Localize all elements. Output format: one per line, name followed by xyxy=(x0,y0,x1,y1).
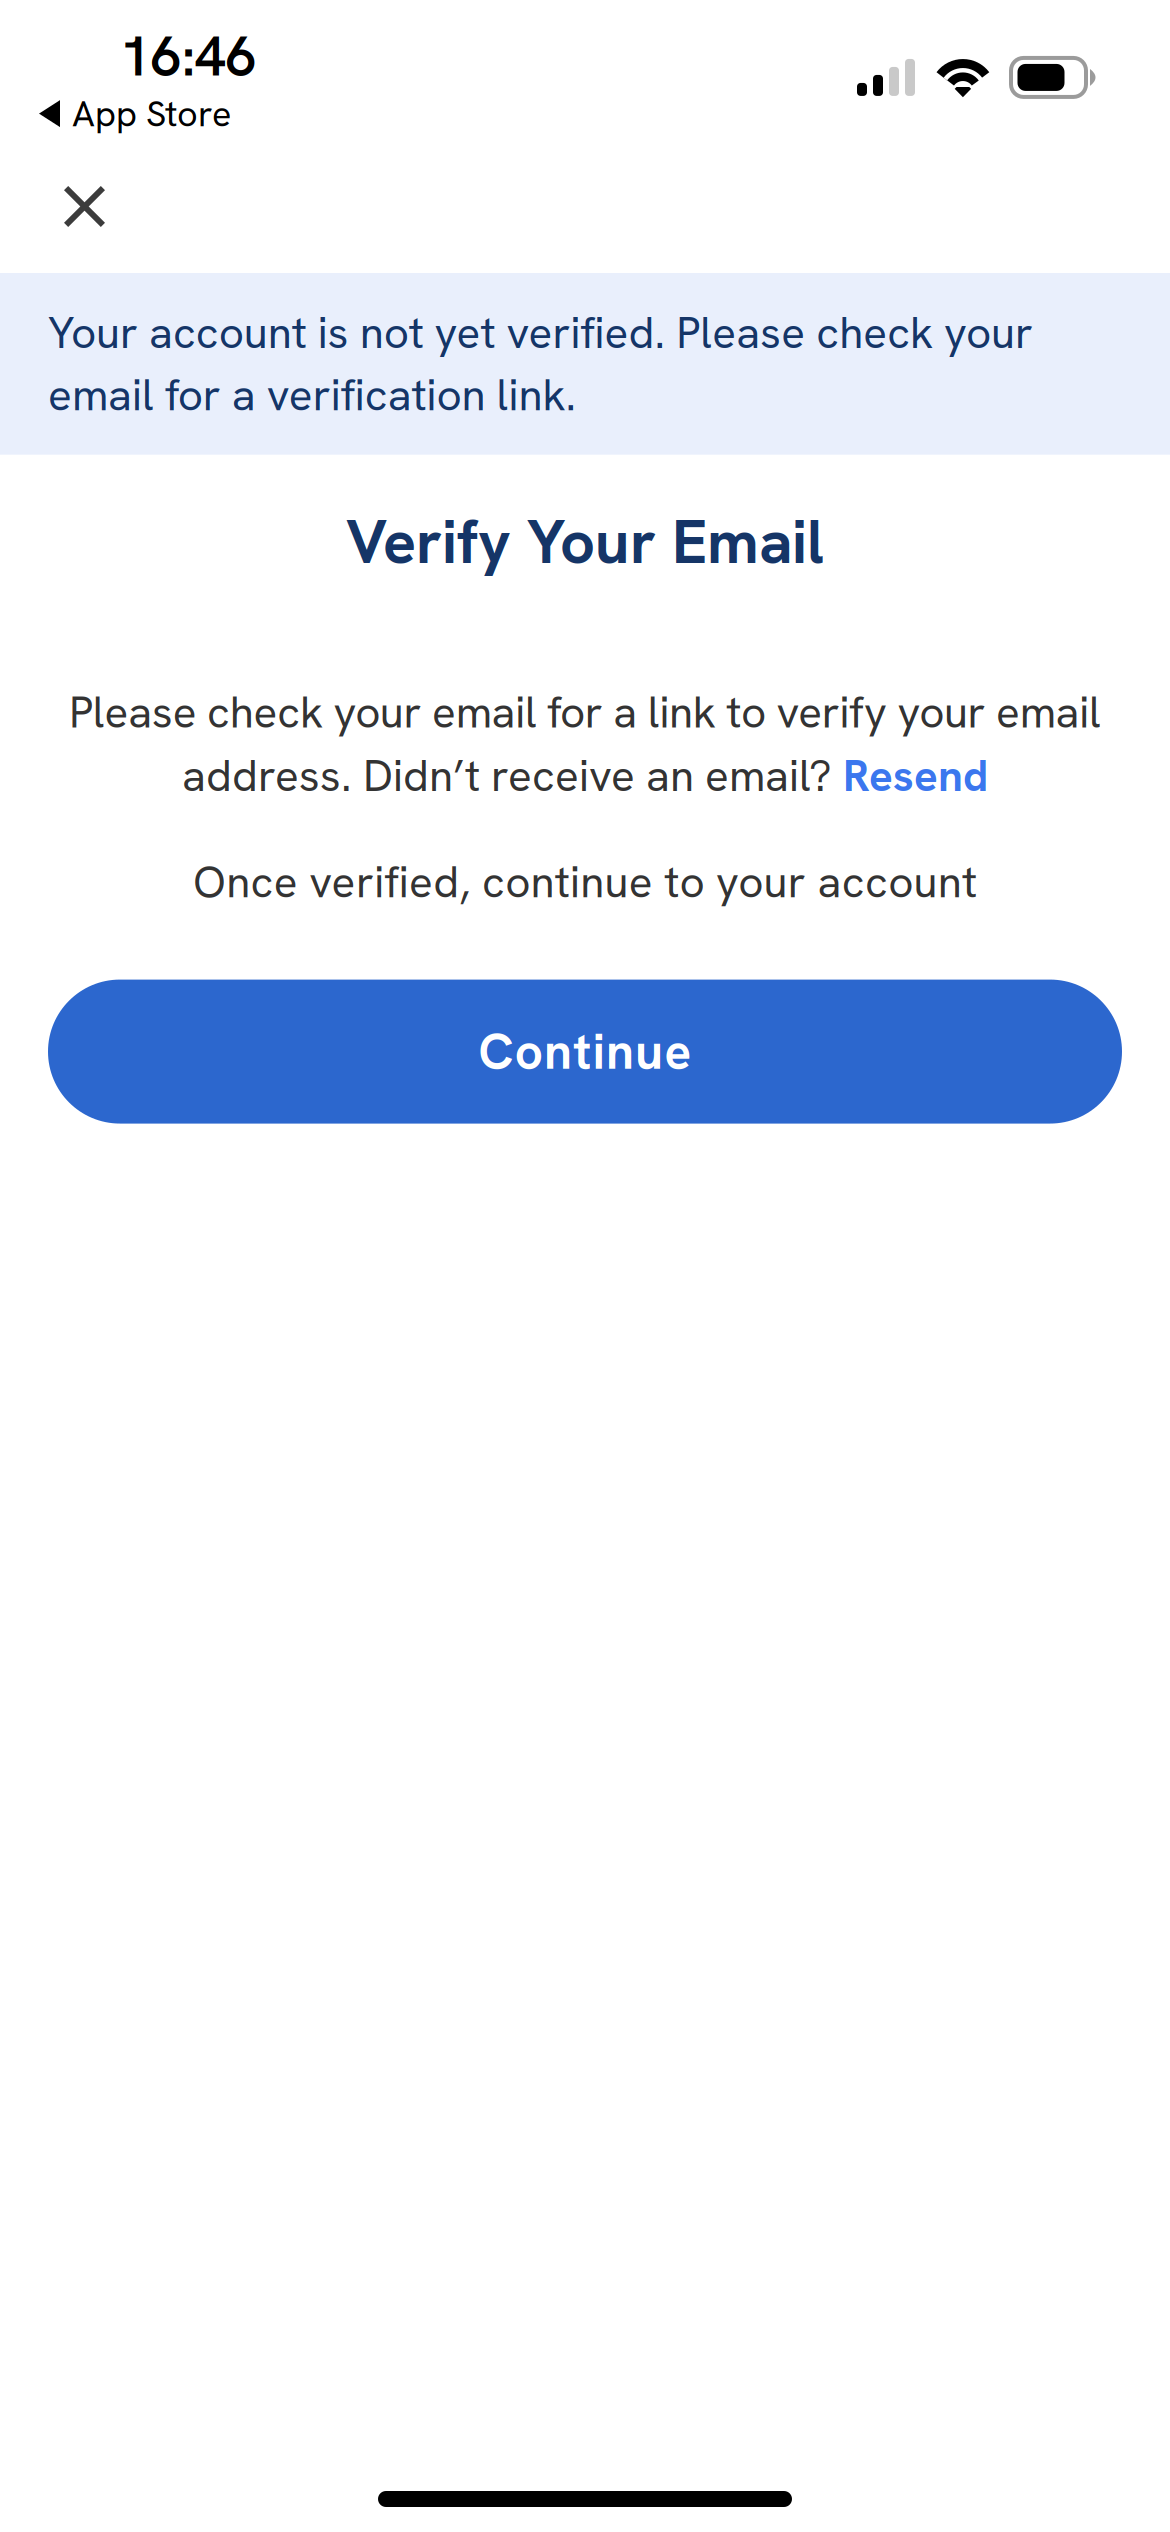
staticText: Continue xyxy=(478,1019,692,1084)
staticText: App Store xyxy=(72,90,231,137)
staticText: address. Didn’t receive an email? xyxy=(182,747,843,804)
button[interactable]: Continue xyxy=(48,980,1122,1124)
staticText: Resend xyxy=(843,747,988,804)
button[interactable]: Resend xyxy=(843,747,988,804)
button[interactable]: Close xyxy=(0,150,135,273)
staticText: Verify Your Email xyxy=(346,502,824,582)
staticText: Once verified, continue to your account xyxy=(193,853,977,910)
staticText: 16:46 xyxy=(120,21,257,92)
staticText: Please check your email for a link to ve… xyxy=(69,684,1101,741)
staticText: Your account is not yet verified. Please… xyxy=(48,304,1033,424)
